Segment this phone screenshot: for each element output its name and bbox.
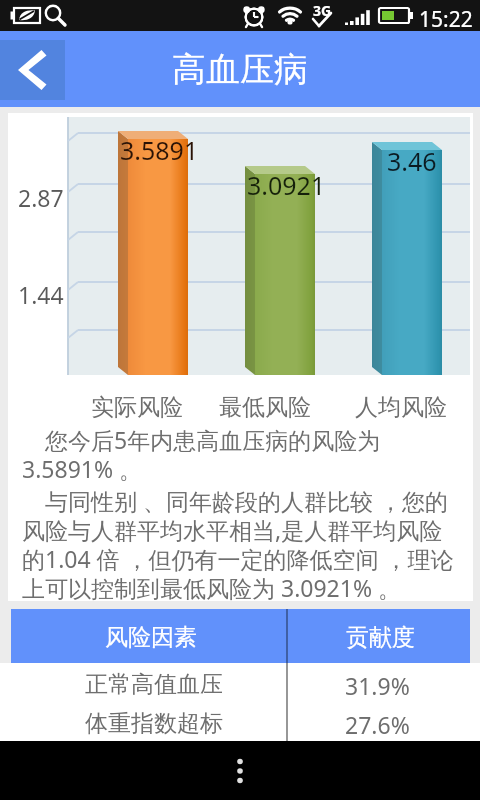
- staticText: 正常高值血压: [85, 670, 223, 699]
- staticText: 最低风险: [219, 393, 311, 422]
- staticText: 3.0921: [247, 168, 326, 202]
- staticText: 3.46: [387, 144, 437, 178]
- staticText: 27.6%: [345, 709, 410, 740]
- staticText: 15:22: [419, 5, 473, 34]
- button[interactable]: 正常高值血压: [0, 663, 480, 702]
- button[interactable]: 体重指数超标: [0, 702, 480, 741]
- staticText: 3.5891: [120, 133, 199, 167]
- staticText: 2.87: [18, 182, 64, 213]
- button[interactable]: More options: [218, 749, 262, 793]
- staticText: 您今后5年内患高血压病的风险为 3.5891% 。: [22, 424, 454, 485]
- staticText: 31.9%: [345, 670, 410, 701]
- staticText: 贡献度: [346, 623, 415, 652]
- staticText: 风险因素: [105, 623, 197, 652]
- button[interactable]: 风险因素: [11, 609, 470, 663]
- staticText: 3G: [313, 1, 332, 20]
- staticText: 与同性别 、同年龄段的人群比较 ，您的风险与人群平均水平相当,是人群平均风险的1…: [22, 485, 454, 604]
- button[interactable]: Back: [0, 40, 65, 100]
- staticText: 1.44: [18, 279, 64, 310]
- staticText: 人均风险: [355, 393, 447, 422]
- staticText: 实际风险: [91, 393, 183, 422]
- staticText: 体重指数超标: [85, 709, 223, 738]
- staticText: 高血压病: [172, 48, 308, 91]
